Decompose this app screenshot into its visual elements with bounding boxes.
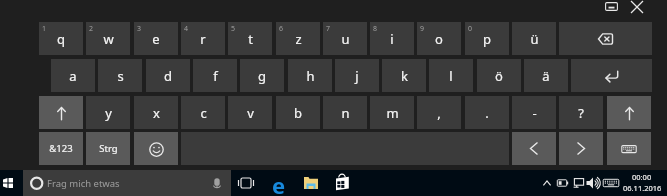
staticText: k <box>401 67 408 85</box>
staticText: 1 <box>42 24 47 34</box>
button[interactable]: key <box>39 96 83 129</box>
staticText: 7 <box>326 24 331 34</box>
button[interactable]: l <box>429 59 473 92</box>
staticText: f <box>213 67 218 85</box>
button[interactable]: e <box>134 22 178 55</box>
staticText: r <box>200 30 206 48</box>
staticText: 9 <box>420 24 425 34</box>
button[interactable]: key <box>512 132 556 165</box>
staticText: 4 <box>184 24 189 34</box>
button[interactable]: - <box>512 96 556 129</box>
staticText: z <box>295 30 302 48</box>
button[interactable]: n <box>323 96 367 129</box>
button[interactable]: v <box>228 96 272 129</box>
button[interactable]: key <box>134 132 178 165</box>
button[interactable]: h <box>288 59 332 92</box>
button[interactable]: &123 <box>39 132 83 165</box>
staticText: ü <box>530 30 539 48</box>
button[interactable]: Microsoft Edge <box>266 170 292 196</box>
button[interactable]: g <box>240 59 284 92</box>
button[interactable]: k <box>382 59 426 92</box>
staticText: ö <box>495 67 503 85</box>
staticText: 3 <box>137 24 142 34</box>
staticText: l <box>449 67 453 85</box>
button[interactable]: key <box>607 132 651 165</box>
button[interactable]: x <box>134 96 178 129</box>
button[interactable]: m <box>370 96 414 129</box>
staticText: m <box>386 104 399 122</box>
button[interactable]: t <box>228 22 272 55</box>
staticText: t <box>248 30 253 48</box>
staticText: b <box>294 104 302 122</box>
button[interactable]: r <box>181 22 225 55</box>
staticText: . <box>485 104 489 122</box>
button[interactable]: key <box>571 59 652 92</box>
button[interactable]: d <box>146 59 190 92</box>
button[interactable]: ä <box>524 59 568 92</box>
staticText: ä <box>542 67 550 85</box>
button[interactable]: p <box>465 22 509 55</box>
button[interactable]: u <box>323 22 367 55</box>
staticText: g <box>258 67 266 85</box>
button[interactable]: File Explorer <box>298 170 324 196</box>
button[interactable]: Strg <box>86 132 130 165</box>
staticText: a <box>69 67 77 85</box>
staticText: h <box>306 67 315 85</box>
staticText: ? <box>578 104 584 122</box>
button[interactable]: Task view <box>233 170 259 196</box>
button[interactable]: i <box>370 22 414 55</box>
staticText: 5 <box>231 24 236 34</box>
staticText: y <box>105 104 112 122</box>
staticText: e <box>152 30 160 48</box>
staticText: Frag mich etwas <box>47 177 120 190</box>
button[interactable]: Store <box>329 170 355 196</box>
button[interactable]: j <box>335 59 379 92</box>
button[interactable]: y <box>86 96 130 129</box>
button[interactable]: c <box>181 96 225 129</box>
button[interactable]: f <box>193 59 237 92</box>
button[interactable]: 00:00 <box>622 170 662 196</box>
staticText: 8 <box>373 24 378 34</box>
staticText: s <box>117 67 124 85</box>
button[interactable]: Battery <box>555 170 570 196</box>
button[interactable]: Close keyboard <box>625 0 649 13</box>
staticText: i <box>390 30 394 48</box>
button[interactable]: Show hidden icons <box>540 170 554 196</box>
staticText: 2 <box>89 24 94 34</box>
button[interactable]: . <box>465 96 509 129</box>
button[interactable]: Change keyboard layout <box>598 0 624 13</box>
button[interactable]: b <box>276 96 320 129</box>
staticText: Strg <box>99 142 118 155</box>
button[interactable]: Start <box>0 170 23 196</box>
staticText: p <box>483 30 491 48</box>
button[interactable]: , <box>417 96 461 129</box>
button[interactable]: Frag mich etwas <box>23 170 231 196</box>
staticText: - <box>532 104 537 122</box>
button[interactable]: w <box>86 22 130 55</box>
staticText: q <box>57 30 65 48</box>
button[interactable]: key <box>559 132 603 165</box>
staticText: c <box>200 104 207 122</box>
staticText: n <box>341 104 350 122</box>
button[interactable]: key <box>607 96 651 129</box>
staticText: d <box>164 67 172 85</box>
button[interactable]: ? <box>559 96 603 129</box>
staticText: 6 <box>279 24 284 34</box>
staticText: w <box>103 30 114 48</box>
button[interactable]: Volume <box>586 170 601 196</box>
button[interactable]: z <box>276 22 320 55</box>
button[interactable]: a <box>51 59 95 92</box>
staticText: 00:00 <box>632 172 652 181</box>
button[interactable]: s <box>98 59 142 92</box>
button[interactable]: ü <box>512 22 556 55</box>
button[interactable]: o <box>417 22 461 55</box>
button[interactable]: ö <box>477 59 521 92</box>
staticText: u <box>341 30 350 48</box>
button[interactable]: Display <box>570 170 586 196</box>
button[interactable]: Touch keyboard <box>603 170 619 196</box>
staticText: o <box>435 30 443 48</box>
button[interactable]: key <box>559 22 652 55</box>
staticText: x <box>153 104 160 122</box>
button[interactable]: q <box>39 22 83 55</box>
